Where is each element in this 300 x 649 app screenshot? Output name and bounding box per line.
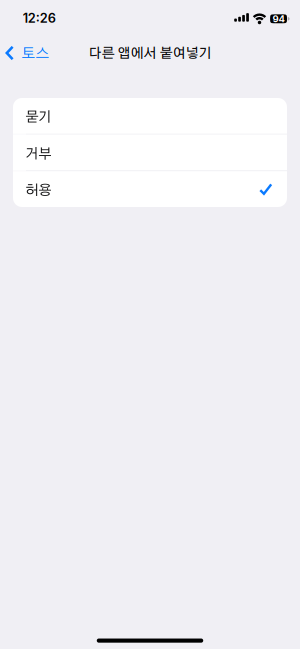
staticText: 토스 xyxy=(21,47,49,61)
staticText: 다른 앱에서 붙여넣기 xyxy=(88,47,211,61)
staticText: 허용 xyxy=(25,184,51,198)
button[interactable]: 거부 xyxy=(13,135,287,170)
staticText: 12:26 xyxy=(23,10,56,26)
button[interactable]: 토스 xyxy=(0,36,58,70)
button[interactable]: 묻기 xyxy=(13,98,287,134)
staticText: 거부 xyxy=(25,147,51,161)
staticText: 묻기 xyxy=(25,110,51,124)
staticText: 94 xyxy=(273,13,285,25)
button[interactable]: 허용 xyxy=(13,171,287,207)
